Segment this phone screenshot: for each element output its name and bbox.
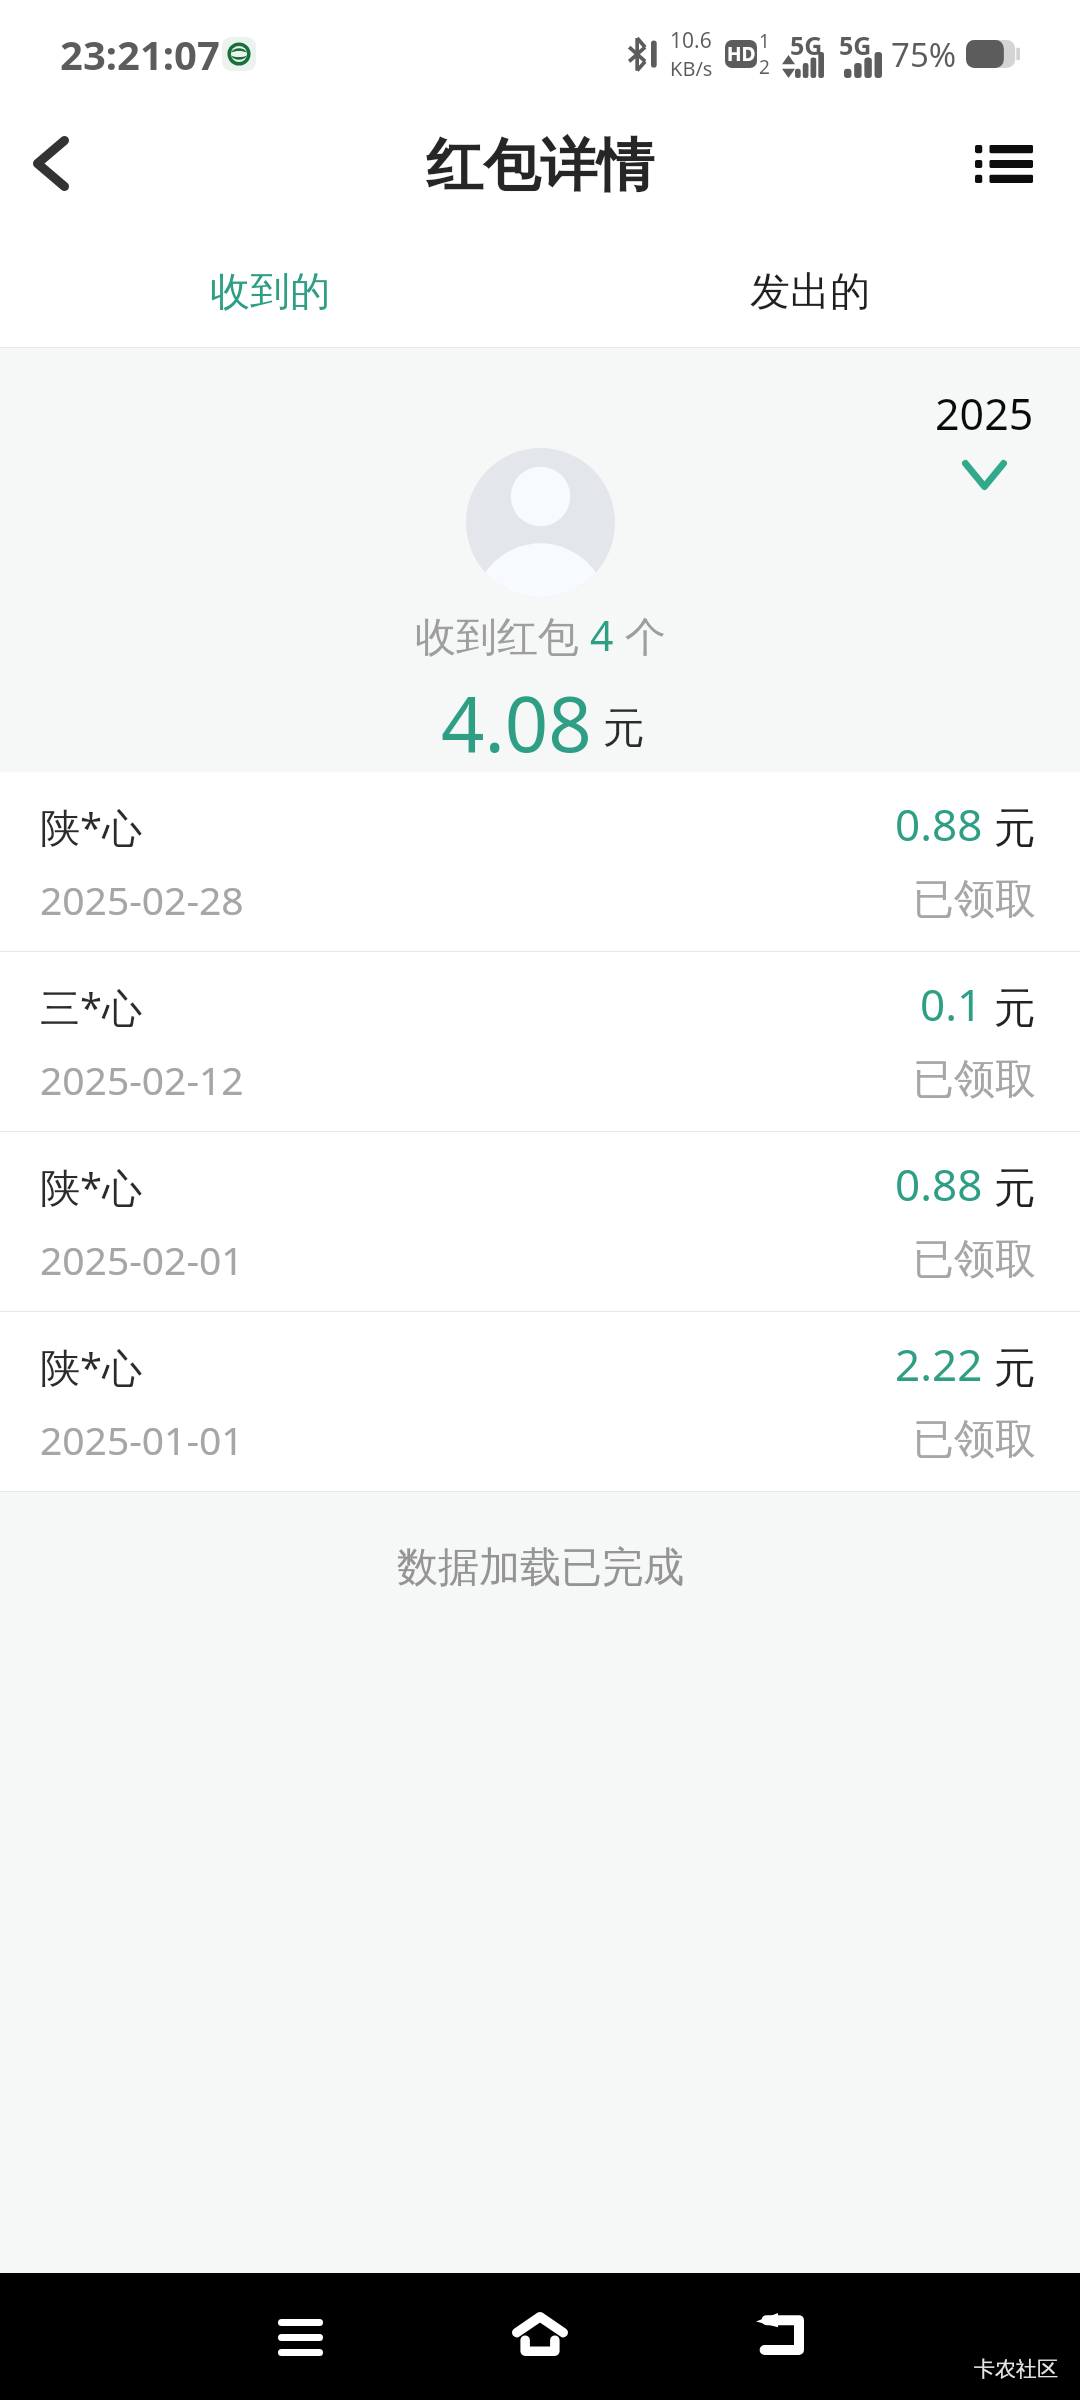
button[interactable]: Back xyxy=(720,2274,840,2394)
button[interactable]: Back xyxy=(0,103,107,223)
staticText: 2025-02-01 xyxy=(40,1233,244,1286)
button[interactable]: Recent apps xyxy=(240,2277,360,2397)
staticText: 陕*心 xyxy=(40,1339,143,1394)
staticText: 5G xyxy=(839,28,872,62)
staticText: 已领取 xyxy=(913,1414,1036,1466)
staticText: 元 xyxy=(983,1157,1036,1214)
staticText: HD xyxy=(727,41,756,67)
staticText: 元 xyxy=(983,797,1036,854)
button[interactable]: Home xyxy=(480,2274,600,2394)
button[interactable]: 陕*心 xyxy=(0,1132,1080,1311)
staticText: 陕*心 xyxy=(40,1159,143,1214)
button[interactable]: 陕*心 xyxy=(0,772,1080,951)
staticText: 4 xyxy=(590,607,614,663)
staticText: 元 xyxy=(603,702,645,755)
staticText: 75% xyxy=(891,32,957,77)
button[interactable]: 发出的 xyxy=(540,241,1080,347)
staticText: 5G xyxy=(790,28,823,62)
staticText: 2025-02-12 xyxy=(40,1053,244,1106)
staticText: 10.6 xyxy=(670,26,712,55)
staticText: 4.08 xyxy=(441,671,592,775)
staticText: 元 xyxy=(983,1337,1036,1394)
staticText: 已领取 xyxy=(913,874,1036,926)
staticText: 卡农社区 xyxy=(974,2356,1058,2382)
staticText: 三*心 xyxy=(40,979,143,1034)
staticText: 红包详情 xyxy=(426,130,654,202)
staticText: 0.1 xyxy=(920,974,983,1034)
staticText: 2025-01-01 xyxy=(40,1413,244,1466)
staticText: 0.88 xyxy=(895,1154,983,1214)
staticText: 收到红包 xyxy=(415,607,590,663)
staticText: 2.22 xyxy=(895,1334,983,1394)
staticText: 1 xyxy=(759,28,770,54)
button[interactable]: Menu xyxy=(949,104,1059,224)
staticText: 陕*心 xyxy=(40,799,143,854)
button[interactable]: 陕*心 xyxy=(0,1312,1080,1491)
staticText: KB/s xyxy=(670,55,713,82)
staticText: 23:21:07 xyxy=(60,27,220,81)
staticText: 发出的 xyxy=(750,266,870,316)
button[interactable]: 三*心 xyxy=(0,952,1080,1131)
staticText: 收到的 xyxy=(210,266,330,316)
staticText: 0.88 xyxy=(895,794,983,854)
button[interactable]: 收到的 xyxy=(0,241,540,347)
staticText: 2025-02-28 xyxy=(40,873,244,926)
button[interactable]: 2025 xyxy=(935,384,1034,490)
staticText: 数据加载已完成 xyxy=(397,1542,684,1594)
staticText: 已领取 xyxy=(913,1054,1036,1106)
staticText: 2 xyxy=(759,54,770,80)
staticText: 元 xyxy=(983,977,1036,1034)
staticText: 2025 xyxy=(935,384,1034,443)
staticText: 已领取 xyxy=(913,1234,1036,1286)
staticText: 个 xyxy=(614,607,666,663)
